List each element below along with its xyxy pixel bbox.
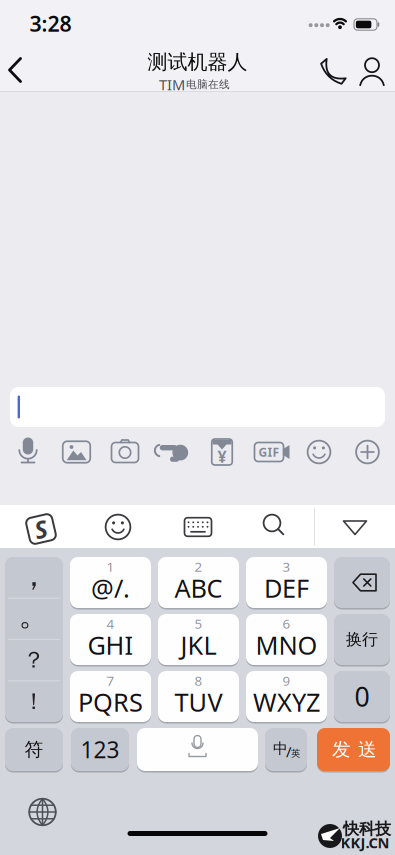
button[interactable] — [25, 795, 59, 829]
staticText: 1 — [106, 558, 114, 575]
staticText: ？ — [22, 646, 45, 674]
button[interactable]: 7 — [70, 671, 151, 722]
staticText: 5 — [194, 615, 202, 632]
button[interactable]: GIF — [250, 435, 290, 469]
button[interactable]: 2 — [158, 557, 239, 608]
staticText: 快科技 — [343, 819, 391, 839]
staticText: 123 — [80, 734, 119, 764]
button[interactable]: 4 — [70, 614, 151, 665]
staticText: 中 — [273, 739, 288, 757]
staticText: 电脑在线 — [186, 78, 230, 91]
staticText: JKL — [180, 628, 216, 662]
button[interactable] — [178, 510, 218, 544]
button[interactable]: 123 — [71, 728, 129, 771]
button[interactable] — [59, 435, 93, 469]
staticText: 测试机器人 — [147, 50, 247, 74]
staticText: ！ — [22, 687, 45, 715]
button[interactable]: ¥ — [205, 435, 239, 469]
button[interactable] — [108, 435, 142, 469]
staticText: 发 — [332, 738, 351, 761]
staticText: 8 — [194, 672, 202, 689]
button[interactable]: 换行 — [334, 614, 390, 665]
button[interactable]: 9 — [246, 671, 327, 722]
button[interactable] — [355, 55, 389, 89]
staticText: ， — [18, 557, 49, 594]
button[interactable]: 3 — [246, 557, 327, 608]
button[interactable]: 0 — [334, 671, 390, 722]
staticText: KKJ.CN — [340, 833, 389, 852]
button[interactable] — [334, 557, 390, 608]
button[interactable] — [338, 510, 372, 544]
staticText: 3:28 — [29, 9, 71, 38]
staticText: ¥ — [217, 446, 226, 467]
button[interactable]: 符 — [5, 728, 63, 771]
staticText: 6 — [282, 615, 290, 632]
staticText: ABC — [174, 571, 222, 605]
button[interactable] — [350, 435, 384, 469]
button[interactable] — [153, 435, 193, 469]
button[interactable] — [101, 510, 135, 544]
staticText: 4 — [106, 615, 114, 632]
button[interactable]: 发 — [317, 728, 390, 771]
staticText: 2 — [194, 558, 202, 575]
staticText: GIF — [258, 444, 279, 460]
staticText: TUV — [174, 685, 222, 719]
staticText: TIM — [159, 75, 185, 94]
button[interactable] — [316, 54, 350, 88]
staticText: MNO — [255, 628, 317, 662]
button[interactable] — [11, 435, 45, 469]
staticText: 0 — [354, 679, 369, 714]
staticText: S — [34, 513, 47, 545]
staticText: 7 — [106, 672, 114, 689]
staticText: 9 — [282, 672, 290, 689]
button[interactable] — [10, 387, 385, 427]
staticText: 送 — [358, 738, 377, 761]
button[interactable]: 8 — [158, 671, 239, 722]
button[interactable]: 6 — [246, 614, 327, 665]
staticText: 3 — [282, 558, 290, 575]
button[interactable]: 中 — [265, 728, 307, 771]
button[interactable]: S — [24, 512, 58, 546]
staticText: / — [286, 742, 291, 761]
staticText: 英 — [291, 748, 300, 759]
button[interactable] — [256, 508, 290, 542]
staticText: WXYZ — [253, 685, 320, 719]
staticText: PQRS — [78, 685, 143, 719]
button[interactable]: 5 — [158, 614, 239, 665]
staticText: 。 — [18, 596, 49, 634]
button[interactable] — [137, 728, 258, 771]
staticText: 换行 — [346, 630, 378, 649]
button[interactable]: ， — [5, 557, 63, 722]
staticText: 符 — [24, 738, 43, 761]
staticText: GHI — [87, 628, 133, 662]
button[interactable]: 1 — [70, 557, 151, 608]
button[interactable] — [0, 48, 33, 92]
staticText: @/. — [91, 571, 130, 605]
staticText: DEF — [264, 571, 309, 605]
button[interactable] — [302, 435, 336, 469]
